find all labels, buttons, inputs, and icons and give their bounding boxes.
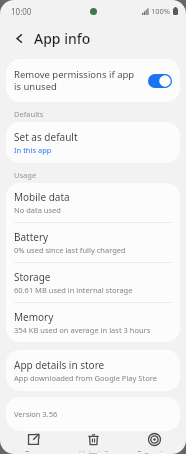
staticText: In this app xyxy=(14,145,52,155)
staticText: Defaults xyxy=(14,109,44,119)
staticText: App info xyxy=(34,29,91,48)
staticText: Force stop xyxy=(137,449,172,452)
button[interactable]: Force stop xyxy=(126,431,182,454)
button[interactable]: App details in store xyxy=(6,350,180,391)
button[interactable]: Remove permissions if app is unused xyxy=(6,59,180,102)
staticText: Uninstall xyxy=(79,449,108,452)
staticText: Usage xyxy=(14,170,37,180)
staticText: Set as default xyxy=(14,130,78,144)
staticText: 100% xyxy=(151,6,171,16)
staticText: Mobile data xyxy=(14,190,70,204)
staticText: 60.61 MB used in internal storage xyxy=(14,285,133,295)
staticText: Open xyxy=(24,449,43,452)
staticText: 10:00 xyxy=(11,6,32,17)
staticText: Version 3.56 xyxy=(14,409,172,419)
button[interactable]: Mobile data xyxy=(6,183,180,222)
staticText: Memory xyxy=(14,310,54,324)
staticText: App downloaded from Google Play Store xyxy=(14,373,157,383)
staticText: Storage xyxy=(14,270,51,284)
button[interactable]: Uninstall xyxy=(65,431,121,454)
button[interactable]: Set as default xyxy=(6,122,180,163)
button[interactable]: Memory xyxy=(6,303,180,342)
staticText: 354 KB used on average in last 3 hours xyxy=(14,325,151,335)
staticText: App details in store xyxy=(14,358,105,372)
staticText: Remove permissions if app is unused xyxy=(14,68,142,93)
button[interactable]: Open xyxy=(5,431,61,454)
button[interactable]: Battery xyxy=(6,223,180,262)
staticText: Battery xyxy=(14,230,49,244)
staticText: 0% used since last fully charged xyxy=(14,245,126,255)
button[interactable]: Storage xyxy=(6,263,180,302)
button[interactable]: Back xyxy=(9,28,29,48)
staticText: No data used xyxy=(14,205,61,215)
